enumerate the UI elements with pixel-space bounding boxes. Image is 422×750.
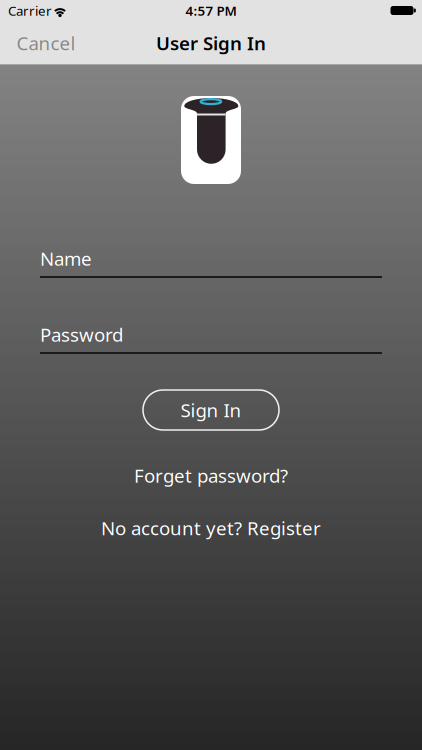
staticText: Name <box>40 246 92 271</box>
staticText: User Sign In <box>156 31 266 55</box>
button[interactable]: Forget password? <box>134 463 288 488</box>
staticText: Cancel <box>16 31 75 55</box>
button[interactable]: Sign In <box>142 389 280 431</box>
staticText: Sign In <box>180 398 241 422</box>
staticText: No account yet? Register <box>101 516 321 540</box>
staticText: Forget password? <box>134 463 288 488</box>
button[interactable]: Password <box>40 320 382 354</box>
staticText: Carrier <box>8 2 52 19</box>
staticText: Password <box>40 322 123 347</box>
button[interactable]: Name <box>40 244 382 278</box>
button[interactable]: No account yet? Register <box>101 516 321 540</box>
staticText: 4:57 PM <box>185 2 236 19</box>
button[interactable]: Cancel <box>16 31 75 55</box>
